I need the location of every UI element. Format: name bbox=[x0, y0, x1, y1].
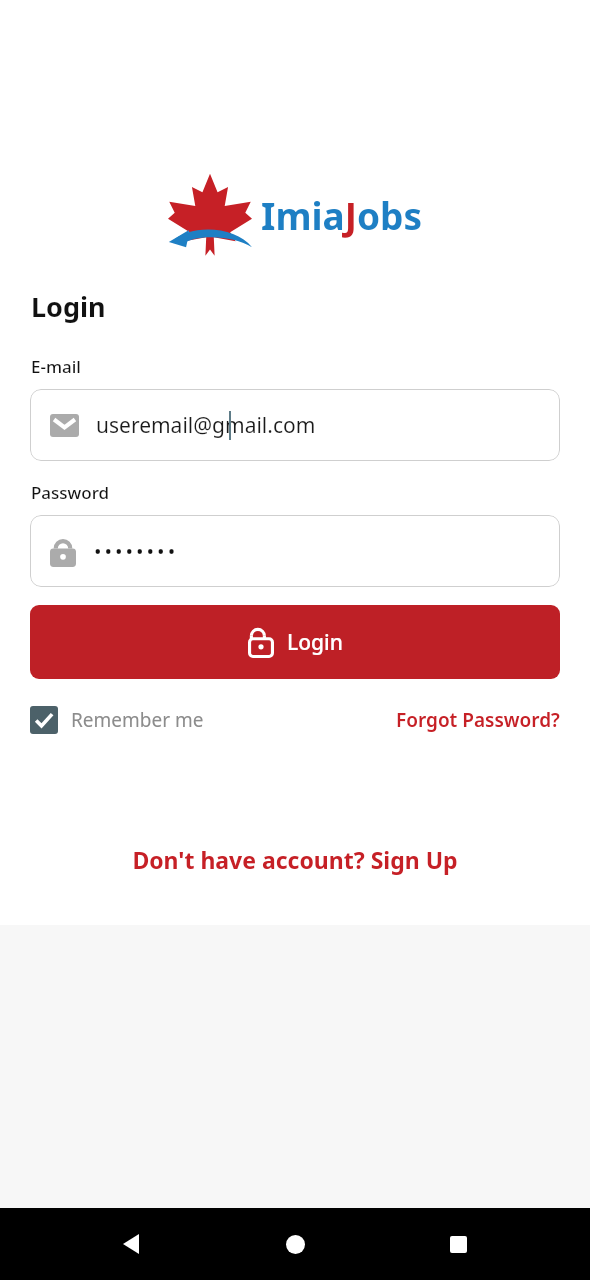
staticText: •••••••• bbox=[94, 538, 179, 565]
button[interactable]: Login bbox=[30, 605, 560, 679]
staticText: Remember me bbox=[71, 707, 204, 733]
button[interactable]: •••••••• bbox=[30, 515, 560, 587]
button[interactable]: useremail@gmail.com bbox=[30, 389, 560, 461]
button[interactable]: Home bbox=[265, 1214, 325, 1274]
button[interactable]: Remember me bbox=[30, 706, 204, 734]
staticText: Login bbox=[287, 628, 343, 657]
staticText: ImiaJobs bbox=[261, 190, 423, 240]
button[interactable]: Back bbox=[103, 1214, 163, 1274]
staticText: useremail@gmail.com bbox=[96, 411, 316, 440]
button[interactable]: Recent apps bbox=[428, 1214, 488, 1274]
staticText: E-mail bbox=[31, 355, 81, 378]
staticText: Don't have account? Sign Up bbox=[132, 844, 458, 875]
staticText: Login bbox=[31, 288, 106, 325]
button[interactable]: Don't have account? Sign Up bbox=[0, 844, 590, 875]
button[interactable]: Forgot Password? bbox=[396, 707, 560, 733]
staticText: Password bbox=[31, 481, 110, 504]
